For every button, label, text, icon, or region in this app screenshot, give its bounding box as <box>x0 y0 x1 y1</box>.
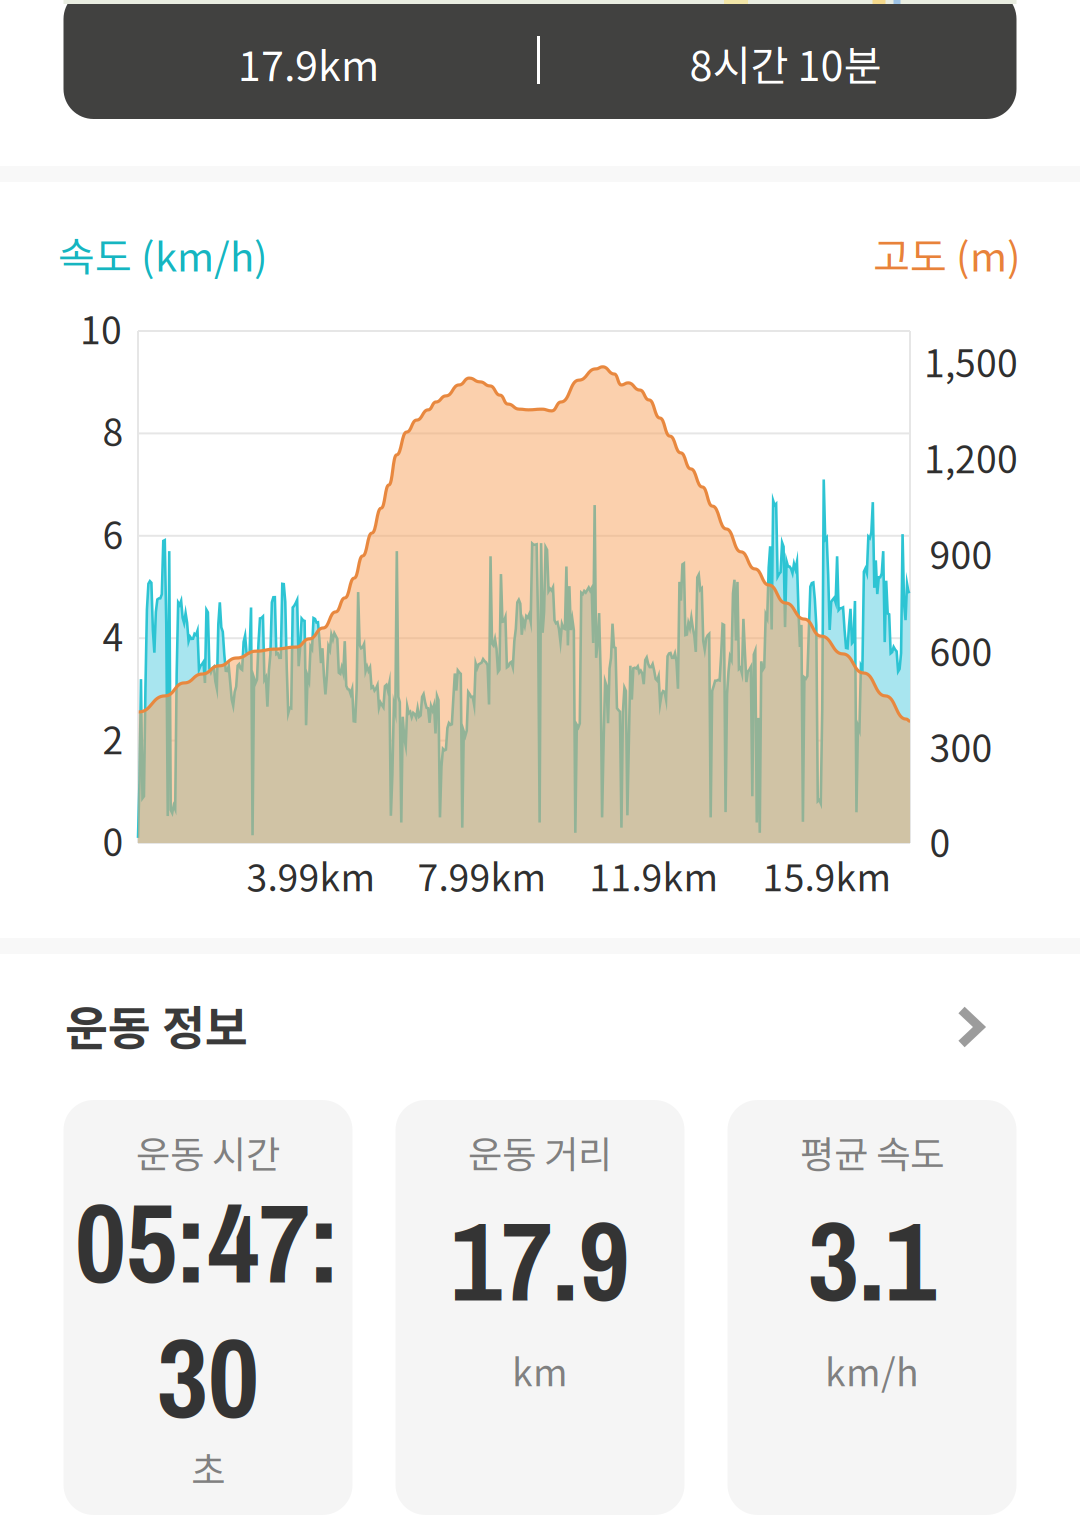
staticText: 3.99km <box>246 848 375 902</box>
staticText: km <box>512 1343 568 1397</box>
button[interactable]: 운동 정보 <box>63 980 1016 1074</box>
staticText: 05:47: <box>75 1167 341 1317</box>
staticText: 600 <box>929 623 992 677</box>
staticText: 15.9km <box>762 848 891 902</box>
staticText: 900 <box>929 526 992 580</box>
button[interactable]: 평균 속도 <box>727 1100 1016 1515</box>
staticText: 11.9km <box>589 848 718 902</box>
staticText: 6 <box>102 506 123 560</box>
staticText: 7.99km <box>417 848 546 902</box>
staticText: 2 <box>102 711 123 765</box>
staticText: 8 <box>102 403 123 457</box>
staticText: 30 <box>157 1302 259 1452</box>
staticText: 1,200 <box>924 430 1018 484</box>
staticText: 4 <box>102 608 123 662</box>
staticText: 17.9 <box>450 1185 629 1335</box>
staticText: 1,500 <box>924 334 1018 388</box>
staticText: 3.1 <box>808 1185 936 1335</box>
staticText: 300 <box>929 719 992 773</box>
staticText: 10 <box>80 301 122 355</box>
staticText: 평균 속도 <box>800 1125 944 1179</box>
staticText: 운동 시간 <box>136 1125 280 1179</box>
staticText: 8시간 10분 <box>689 33 881 93</box>
staticText: 고도 (m) <box>873 225 1021 283</box>
staticText: 초 <box>191 1441 225 1495</box>
staticText: 0 <box>929 814 950 868</box>
button[interactable]: 운동 거리 <box>395 1100 684 1515</box>
button[interactable]: 운동 시간 <box>63 1100 352 1515</box>
staticText: km/h <box>825 1343 919 1397</box>
staticText: 속도 (km/h) <box>58 225 268 283</box>
staticText: 운동 정보 <box>65 991 248 1059</box>
staticText: 17.9km <box>238 33 379 93</box>
staticText: 0 <box>102 813 123 867</box>
staticText: 운동 거리 <box>468 1125 612 1179</box>
